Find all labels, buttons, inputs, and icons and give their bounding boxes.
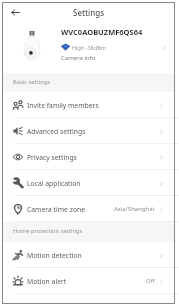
button[interactable]: Camera time zone xyxy=(3,196,174,222)
staticText: Local application xyxy=(27,179,158,188)
button[interactable]: Motion detection xyxy=(3,242,174,268)
staticText: Invite family members xyxy=(27,101,158,110)
staticText: Motion alert xyxy=(27,277,146,286)
button[interactable]: Advanced settings xyxy=(3,118,174,144)
staticText: Camera time zone xyxy=(27,205,114,214)
staticText: Settings xyxy=(73,7,105,18)
staticText: Motion detection xyxy=(27,251,158,260)
staticText: Home protection settings xyxy=(13,227,83,235)
button[interactable]: Motion alert xyxy=(3,268,174,294)
button[interactable]: Invite family members xyxy=(3,92,174,118)
staticText: Privacy settings xyxy=(27,153,158,162)
staticText: Asia/Shanghai xyxy=(114,205,155,213)
staticText: Camera info xyxy=(61,54,96,62)
button[interactable]: Privacy settings xyxy=(3,144,174,170)
button[interactable]: Back xyxy=(9,6,22,19)
button[interactable]: Local application xyxy=(3,170,174,196)
staticText: WVC0AOBUZMF6QS64 xyxy=(61,27,143,37)
staticText: High -38dBm xyxy=(72,44,106,51)
staticText: Basic settings xyxy=(13,78,51,86)
button[interactable]: WVC0AOBUZMF6QS64 xyxy=(3,22,174,73)
staticText: Advanced settings xyxy=(27,127,158,136)
staticText: Off xyxy=(146,277,155,285)
